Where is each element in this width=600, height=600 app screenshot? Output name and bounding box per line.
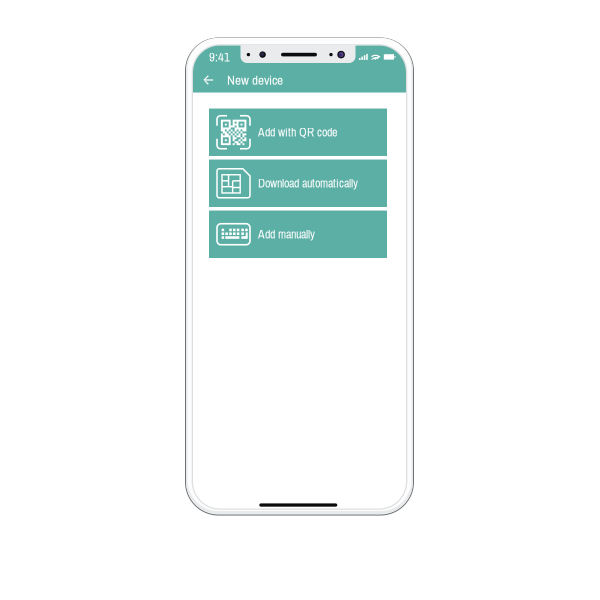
button[interactable]: Back: [197, 69, 219, 91]
button[interactable]: Add manually: [209, 210, 387, 258]
staticText: Add manually: [258, 226, 315, 242]
staticText: 9:41: [209, 48, 230, 65]
staticText: New device: [227, 71, 283, 89]
staticText: Add with QR code: [258, 124, 337, 140]
button[interactable]: Download automatically: [209, 159, 387, 207]
staticText: Download automatically: [258, 175, 358, 191]
button[interactable]: Add with QR code: [209, 108, 387, 156]
